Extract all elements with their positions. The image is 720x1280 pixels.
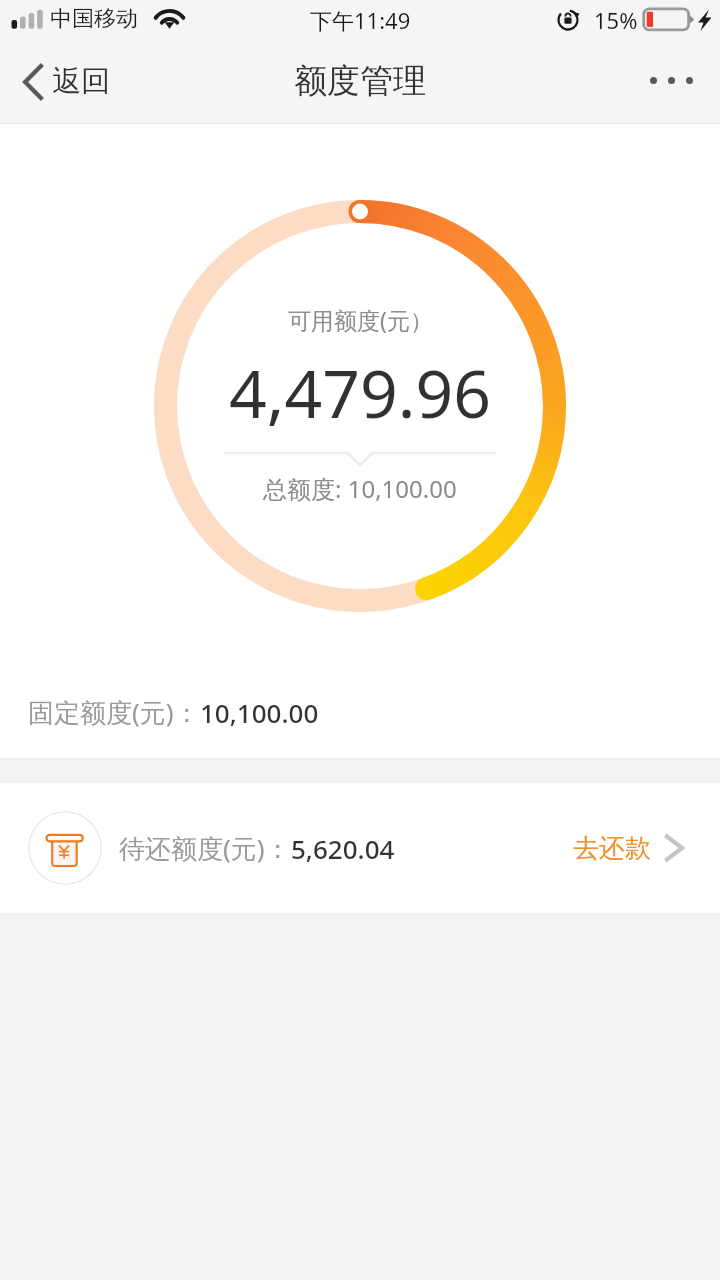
staticText: 额度管理 bbox=[294, 60, 426, 102]
staticText: 可用额度(元） bbox=[288, 304, 433, 335]
button[interactable]: 返回 bbox=[0, 55, 126, 108]
staticText: 15% bbox=[594, 5, 638, 35]
staticText: 去还款 bbox=[573, 832, 651, 865]
staticText: 下午11:49 bbox=[310, 5, 411, 35]
staticText: 4,479.96 bbox=[229, 347, 491, 437]
staticText: 待还额度(元)： bbox=[119, 830, 291, 866]
staticText: 返回 bbox=[52, 63, 110, 100]
button[interactable]: 待还额度(元)： bbox=[0, 783, 720, 913]
staticText: 总额度: 10,100.00 bbox=[263, 472, 457, 505]
button[interactable]: More options bbox=[626, 59, 720, 102]
staticText: 中国移动 bbox=[50, 5, 138, 33]
staticText: 5,620.04 bbox=[291, 831, 395, 866]
staticText: 固定额度(元)： bbox=[28, 694, 200, 730]
staticText: 10,100.00 bbox=[200, 695, 319, 730]
